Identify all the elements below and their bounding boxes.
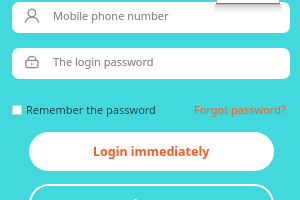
- staticText: Login immediately: [93, 143, 210, 160]
- button[interactable]: Password: [12, 48, 290, 79]
- staticText: Register now: [109, 195, 194, 200]
- staticText: Remember the password: [26, 102, 156, 117]
- button[interactable]: Remember the password: [12, 102, 156, 117]
- other: Password: [25, 53, 41, 69]
- button[interactable]: Forgot password?: [194, 102, 300, 117]
- staticText: The login password: [53, 54, 154, 69]
- button[interactable]: Login immediately: [29, 132, 274, 171]
- button[interactable]: Register now: [29, 184, 274, 200]
- staticText: Mobile phone number: [53, 8, 169, 23]
- other: Account: [25, 7, 41, 23]
- button[interactable]: Account: [12, 2, 290, 33]
